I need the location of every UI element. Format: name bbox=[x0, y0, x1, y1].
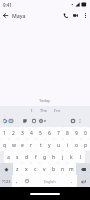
staticText: x bbox=[25, 166, 28, 173]
button[interactable]: Backspace bbox=[76, 163, 90, 175]
button[interactable]: 0 bbox=[81, 127, 90, 139]
staticText: v bbox=[43, 166, 46, 173]
button[interactable]: Space bbox=[32, 175, 67, 187]
button[interactable]: o bbox=[72, 139, 81, 151]
button[interactable]: GIF bbox=[7, 117, 14, 124]
button[interactable]: s bbox=[13, 151, 22, 163]
staticText: r bbox=[30, 142, 33, 149]
button[interactable]: t bbox=[36, 139, 45, 151]
button[interactable]: 7 bbox=[54, 127, 63, 139]
button[interactable]: 4 bbox=[27, 127, 36, 139]
staticText: b bbox=[52, 166, 56, 173]
button[interactable]: Call bbox=[60, 10, 70, 20]
button[interactable]: m bbox=[67, 163, 76, 175]
button[interactable]: Video call bbox=[70, 10, 80, 20]
button[interactable]: Emoji bbox=[22, 175, 32, 187]
button[interactable]: h bbox=[49, 151, 58, 163]
button[interactable]: v bbox=[40, 163, 49, 175]
button[interactable]: Stickers bbox=[21, 117, 28, 124]
staticText: h bbox=[52, 154, 56, 161]
staticText: m bbox=[69, 166, 74, 173]
button[interactable]: g bbox=[40, 151, 49, 163]
button[interactable]: 9 bbox=[72, 127, 81, 139]
button[interactable]: x bbox=[22, 163, 31, 175]
staticText: d bbox=[25, 154, 29, 161]
button[interactable]: c bbox=[31, 163, 40, 175]
button[interactable]: Clipboard bbox=[30, 117, 37, 124]
staticText: Maya bbox=[12, 12, 26, 19]
button[interactable]: 1 bbox=[0, 127, 9, 139]
staticText: ?123 bbox=[2, 179, 11, 184]
staticText: z bbox=[16, 166, 19, 173]
button[interactable]: Shift bbox=[0, 163, 13, 175]
staticText: 9 bbox=[75, 130, 78, 137]
staticText: g bbox=[43, 154, 47, 161]
staticText: i bbox=[67, 142, 69, 149]
staticText: . bbox=[71, 178, 73, 185]
button[interactable]: ?123 bbox=[0, 175, 12, 187]
staticText: 2 bbox=[12, 130, 15, 137]
staticText: 9:41 bbox=[3, 2, 12, 8]
staticText: 6 bbox=[48, 130, 51, 137]
button[interactable]: f bbox=[31, 151, 40, 163]
staticText: w bbox=[12, 142, 16, 149]
staticText: q bbox=[3, 142, 7, 149]
staticText: j bbox=[62, 154, 64, 161]
button[interactable]: a bbox=[4, 151, 13, 163]
button[interactable]: j bbox=[58, 151, 67, 163]
staticText: t bbox=[40, 142, 42, 149]
staticText: English bbox=[44, 179, 56, 184]
button[interactable]: 3 bbox=[18, 127, 27, 139]
staticText: Today bbox=[39, 98, 51, 103]
staticText: 5 bbox=[39, 130, 42, 137]
button[interactable]: More options bbox=[80, 10, 90, 20]
staticText: l bbox=[80, 154, 82, 161]
staticText: a bbox=[7, 154, 10, 161]
button[interactable]: i bbox=[63, 139, 72, 151]
button[interactable]: r bbox=[27, 139, 36, 151]
staticText: I'm bbox=[54, 108, 60, 113]
staticText: 7 bbox=[57, 130, 60, 137]
button[interactable]: l bbox=[76, 151, 85, 163]
staticText: 1 bbox=[3, 130, 6, 137]
staticText: o bbox=[75, 142, 79, 149]
button[interactable]: u bbox=[54, 139, 63, 151]
button[interactable]: Translate bbox=[37, 117, 44, 124]
button[interactable]: 8 bbox=[63, 127, 72, 139]
staticText: p bbox=[84, 142, 88, 149]
button[interactable]: b bbox=[49, 163, 58, 175]
button[interactable]: . bbox=[67, 175, 77, 187]
staticText: 8 bbox=[66, 130, 69, 137]
staticText: 4 bbox=[30, 130, 33, 137]
button[interactable]: Back bbox=[0, 10, 11, 21]
button[interactable]: k bbox=[67, 151, 76, 163]
button[interactable]: 2 bbox=[9, 127, 18, 139]
button[interactable]: y bbox=[45, 139, 54, 151]
button[interactable]: Expand bbox=[41, 117, 48, 124]
staticText: f bbox=[35, 154, 37, 161]
button[interactable]: p bbox=[81, 139, 90, 151]
staticText: , bbox=[16, 178, 18, 185]
staticText: k bbox=[70, 154, 73, 161]
button[interactable]: , bbox=[12, 175, 22, 187]
staticText: s bbox=[16, 154, 19, 161]
button[interactable]: 6 bbox=[45, 127, 54, 139]
button[interactable]: w bbox=[9, 139, 18, 151]
staticText: n bbox=[61, 166, 65, 173]
button[interactable]: More bbox=[76, 117, 83, 124]
staticText: u bbox=[57, 142, 61, 149]
button[interactable]: 5 bbox=[36, 127, 45, 139]
staticText: I bbox=[31, 108, 33, 113]
staticText: 3 bbox=[21, 130, 24, 137]
staticText: c bbox=[34, 166, 37, 173]
staticText: 0 bbox=[84, 130, 87, 137]
staticText: e bbox=[21, 142, 24, 149]
button[interactable]: d bbox=[22, 151, 31, 163]
button[interactable]: q bbox=[0, 139, 9, 151]
button[interactable]: z bbox=[13, 163, 22, 175]
button[interactable]: Google search bbox=[1, 117, 8, 124]
button[interactable]: Settings bbox=[69, 117, 76, 124]
button[interactable]: Enter bbox=[77, 175, 90, 187]
button[interactable]: n bbox=[58, 163, 67, 175]
button[interactable]: e bbox=[18, 139, 27, 151]
